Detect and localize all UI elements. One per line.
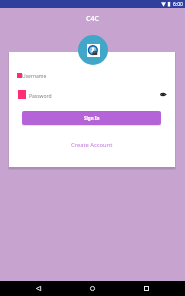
button[interactable]: Show password — [157, 89, 168, 100]
staticText: Password — [29, 93, 52, 100]
button[interactable]: Home — [83, 281, 102, 296]
button[interactable]: Sign In — [22, 111, 161, 125]
button[interactable]: Create Account — [68, 138, 116, 152]
staticText: 6:00 — [173, 1, 183, 8]
button[interactable]: Recent apps — [137, 281, 156, 296]
staticText: Sign In — [84, 115, 100, 121]
button[interactable]: Back — [29, 281, 48, 296]
staticText: C4C — [86, 14, 99, 24]
staticText: Create Account — [71, 141, 113, 149]
staticText: Username — [22, 73, 47, 80]
